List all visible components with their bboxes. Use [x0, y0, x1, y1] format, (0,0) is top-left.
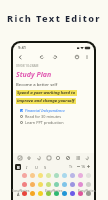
button[interactable]: Color	[62, 173, 67, 178]
button[interactable]: Color	[86, 191, 91, 196]
button[interactable]: Undo	[38, 53, 46, 61]
button[interactable]: Color	[86, 173, 91, 178]
button[interactable]: More options	[83, 53, 91, 61]
button[interactable]: Color	[46, 173, 51, 178]
button[interactable]: Increase size	[86, 164, 91, 169]
button[interactable]: Read for 30 minutes	[20, 113, 91, 119]
button[interactable]: Color	[46, 182, 51, 187]
button[interactable]: Record	[54, 154, 62, 162]
button[interactable]: Color	[70, 182, 75, 187]
button[interactable]: Color	[62, 191, 67, 196]
staticText: Study Plan	[16, 70, 52, 80]
staticText: 9:41	[18, 45, 26, 50]
button[interactable]: Learn PPT production	[20, 119, 91, 125]
staticText: Rich Text Editor	[7, 12, 101, 25]
button[interactable]: S	[42, 164, 48, 170]
button[interactable]: Color	[54, 182, 59, 187]
staticText: EasyNotes	[45, 188, 63, 193]
button[interactable]: Color	[62, 182, 67, 187]
button[interactable]: Highlight	[25, 154, 33, 162]
staticText: Financial Independence	[25, 108, 65, 113]
staticText: B	[17, 165, 20, 170]
button[interactable]: Color	[78, 191, 83, 196]
staticText: Read for 30 minutes	[25, 114, 61, 119]
button[interactable]: Financial Independence	[20, 107, 91, 113]
button[interactable]: Draw	[64, 154, 72, 162]
button[interactable]: Reminder	[73, 53, 81, 61]
button[interactable]: Color	[54, 191, 59, 196]
button[interactable]: Checklist	[16, 154, 24, 162]
staticText: S	[44, 165, 47, 170]
button[interactable]: Decrease size	[76, 164, 81, 169]
staticText: I	[26, 165, 28, 170]
staticText: EasyNotes	[78, 188, 96, 193]
button[interactable]: Color	[70, 173, 75, 178]
button[interactable]: Color	[30, 182, 35, 187]
button[interactable]: Color	[38, 173, 43, 178]
staticText: Learn PPT production	[25, 120, 64, 125]
button[interactable]: Color	[78, 182, 83, 187]
staticText: Spend a year working hard to	[17, 90, 76, 96]
button[interactable]: Image	[45, 154, 53, 162]
staticText: improve and change yourself	[17, 98, 75, 104]
button[interactable]: Color	[22, 173, 27, 178]
staticText: EasyNotes	[12, 188, 30, 193]
button[interactable]: Color	[70, 191, 75, 196]
staticText: Become a better self	[16, 82, 58, 88]
button[interactable]: Redo	[51, 53, 59, 61]
button[interactable]: Color	[38, 191, 43, 196]
staticText: U	[35, 165, 38, 170]
staticText: 09/08 10:28AM	[16, 64, 39, 68]
button[interactable]: Color	[46, 191, 51, 196]
button[interactable]: Color	[30, 191, 35, 196]
button[interactable]: B	[15, 164, 21, 170]
button[interactable]: Color	[38, 182, 43, 187]
button[interactable]: Text color	[15, 191, 21, 197]
staticText: 16	[81, 164, 86, 169]
button[interactable]: Color	[22, 191, 27, 196]
button[interactable]: List	[74, 154, 82, 162]
button[interactable]: Back	[16, 53, 24, 61]
button[interactable]: Color	[78, 173, 83, 178]
staticText: A	[17, 192, 20, 197]
button[interactable]: Link	[83, 154, 91, 162]
button[interactable]: U	[33, 164, 39, 170]
button[interactable]: Color	[54, 173, 59, 178]
button[interactable]: I	[24, 164, 30, 170]
button[interactable]: Color	[22, 182, 27, 187]
staticText: Tt	[69, 164, 73, 169]
button[interactable]: Color	[30, 173, 35, 178]
button[interactable]: Color	[86, 182, 91, 187]
button[interactable]: Attachment	[35, 154, 43, 162]
